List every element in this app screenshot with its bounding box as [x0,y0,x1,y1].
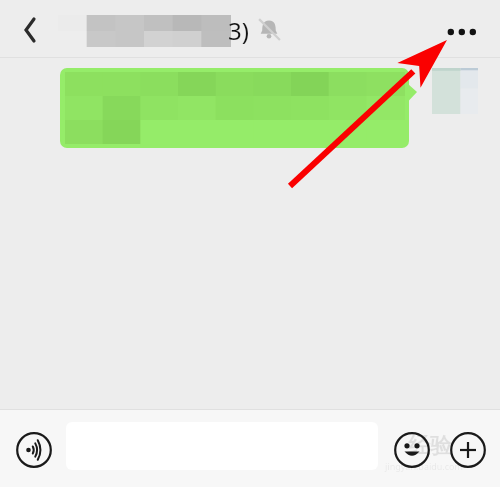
button[interactable]: More options [442,16,486,48]
button[interactable]: Back [8,10,48,50]
staticText: 经验 [408,432,452,460]
button[interactable]: Voice message [16,432,52,468]
button[interactable]: Mute notifications [256,16,282,42]
button[interactable] [60,68,417,148]
button[interactable]: More functions [450,432,486,468]
button[interactable]: Avatar [432,68,478,114]
staticText: jingyan.baidu.com [385,460,463,472]
staticText: 3) [228,14,249,47]
button[interactable]: Emoji [394,432,430,468]
